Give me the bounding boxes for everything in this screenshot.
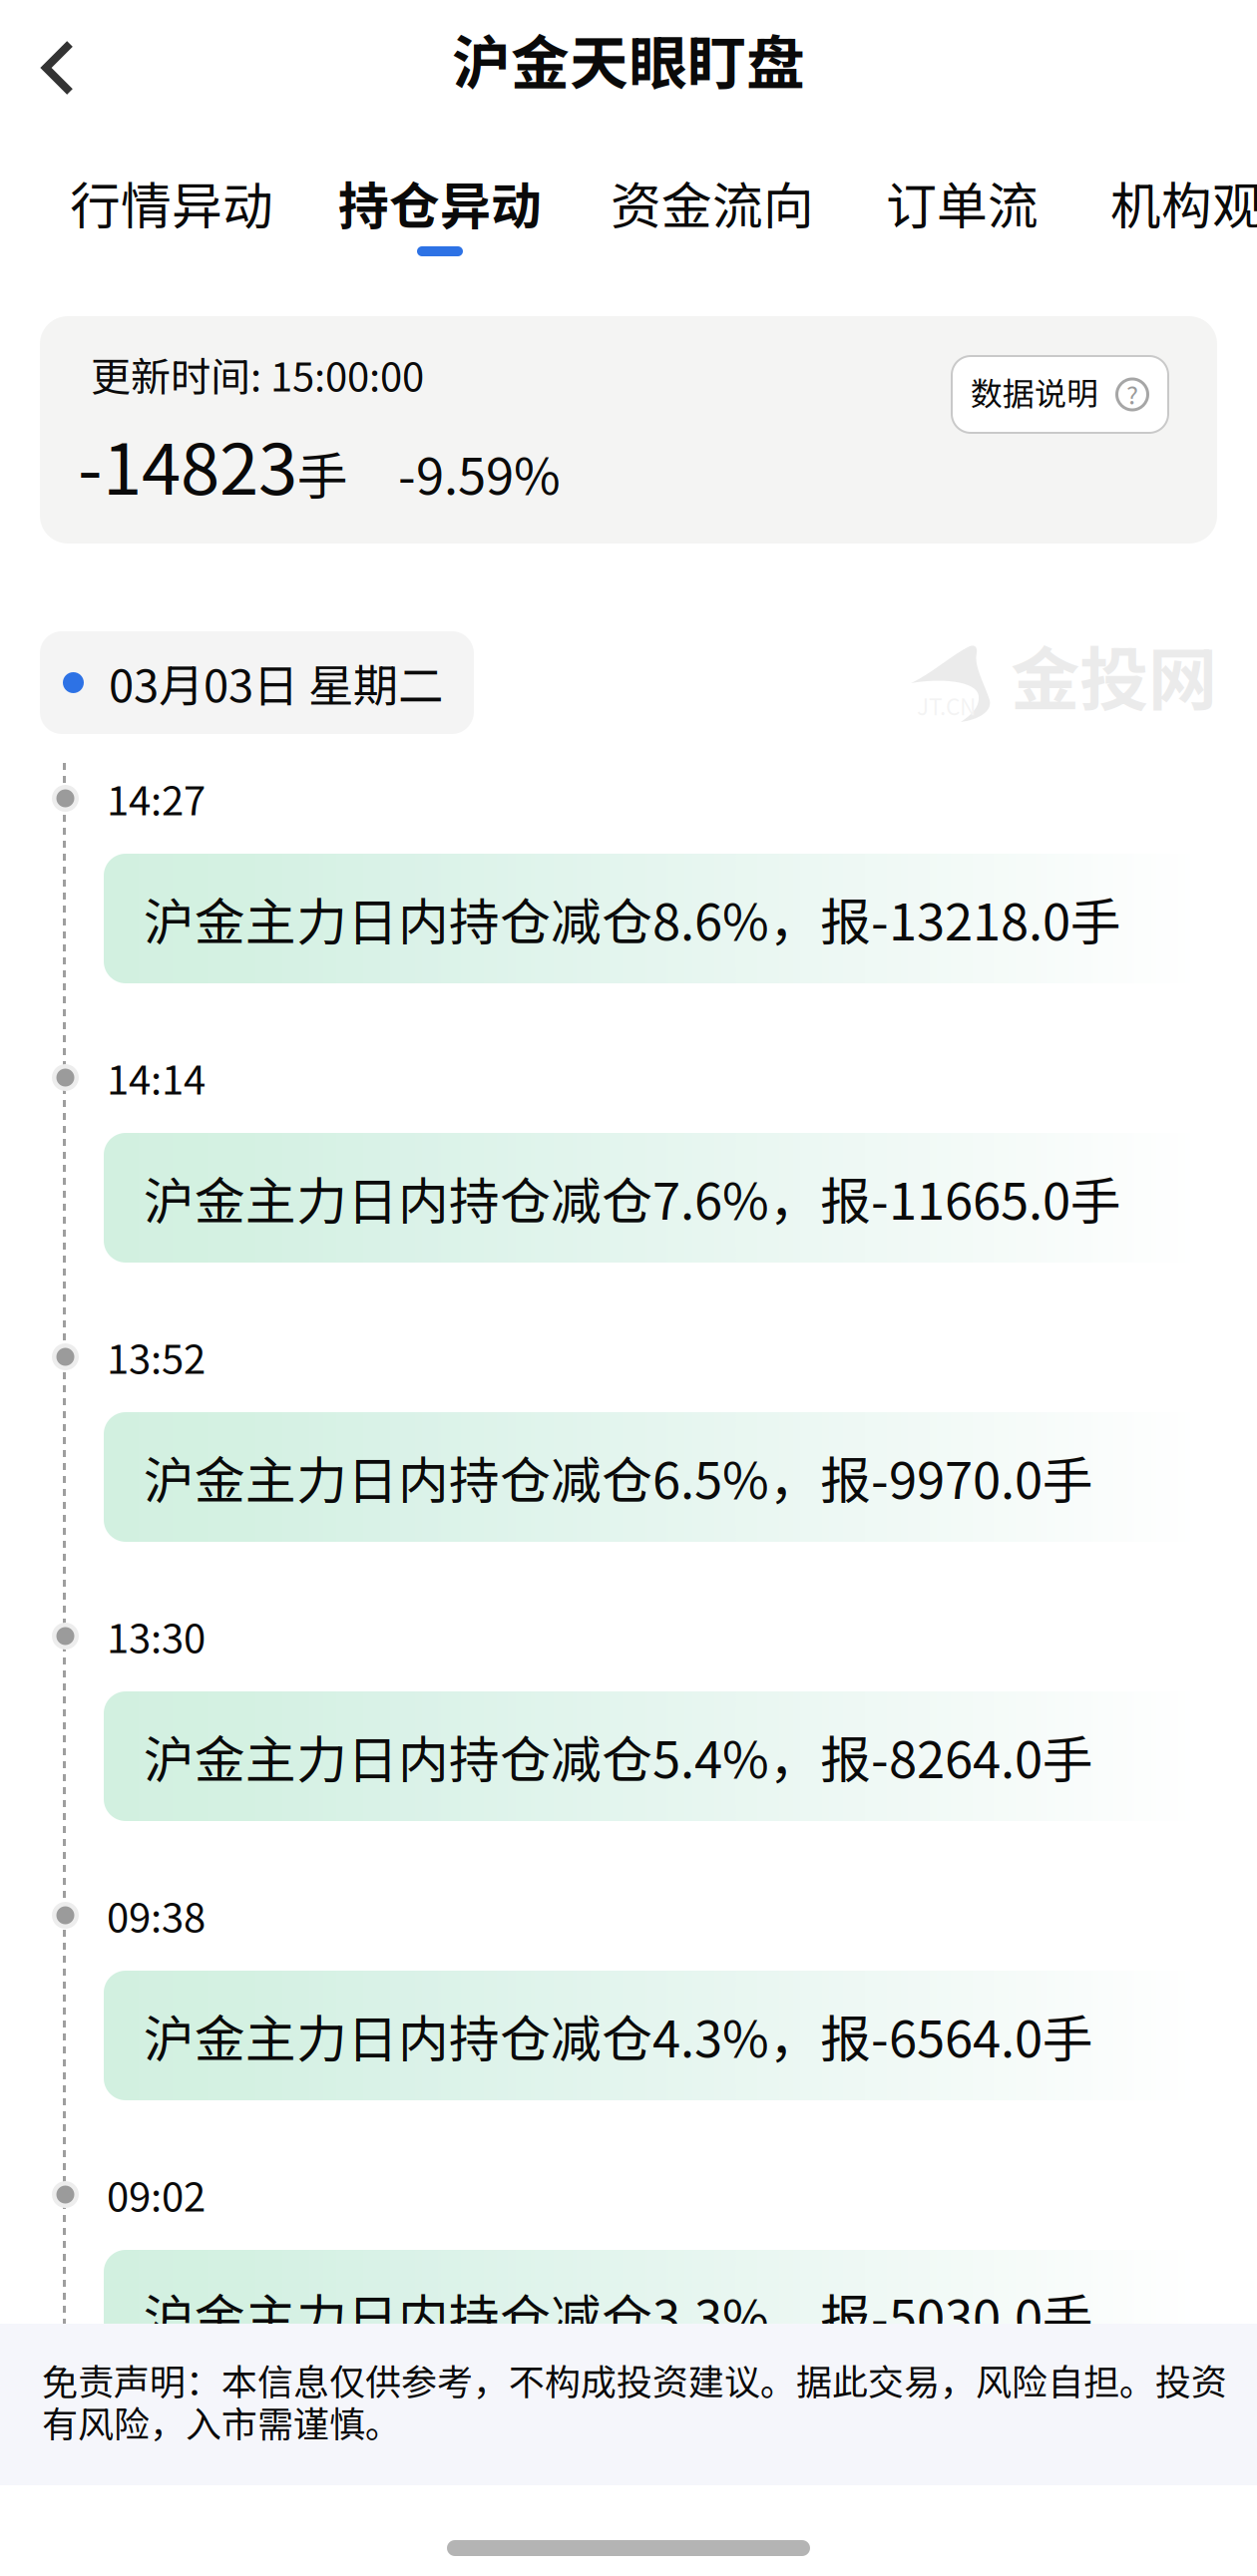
button[interactable]: 沪金主力日内持仓减仓6.5%，报-9970.0手	[104, 1412, 1257, 1542]
staticText: -9.59%	[398, 436, 561, 509]
button[interactable]: Back	[0, 0, 116, 127]
staticText: 14:27	[107, 769, 206, 827]
staticText: 沪金天眼盯盘	[452, 16, 805, 101]
staticText: -14823	[78, 413, 297, 515]
button[interactable]: 沪金主力日内持仓减仓3.3%，报-5030.0手	[104, 2250, 1257, 2380]
button[interactable]: 资金流向	[611, 172, 814, 256]
staticText: 机构观点	[1110, 166, 1257, 239]
staticText: 沪金主力日内持仓减仓3.3%，报-5030.0手	[144, 2278, 1093, 2351]
button[interactable]: 持仓异动	[338, 172, 542, 256]
button[interactable]: 订单流	[886, 172, 1039, 256]
staticText: 金投网	[1011, 624, 1217, 724]
staticText: 03月03日 星期二	[109, 650, 443, 715]
button[interactable]: 行情异动	[70, 172, 273, 256]
staticText: JT.CN	[917, 689, 976, 722]
staticText: 09:38	[107, 1886, 206, 1944]
staticText: 13:52	[107, 1327, 206, 1385]
staticText: 09:02	[107, 2165, 206, 2223]
staticText: 行情异动	[70, 166, 273, 239]
staticText: 沪金主力日内持仓减仓8.6%，报-13218.0手	[144, 882, 1121, 955]
button[interactable]: 机构观点	[1110, 172, 1257, 256]
staticText: 手	[297, 436, 348, 509]
staticText: 有风险，入市需谨慎。	[42, 2396, 401, 2448]
staticText: 沪金主力日内持仓减仓5.4%，报-8264.0手	[144, 1720, 1093, 1793]
staticText: 沪金主力日内持仓减仓6.5%，报-9970.0手	[144, 1440, 1093, 1514]
button[interactable]: 沪金主力日内持仓减仓7.6%，报-11665.0手	[104, 1133, 1257, 1263]
staticText: 沪金主力日内持仓减仓7.6%，报-11665.0手	[144, 1161, 1121, 1234]
staticText: 持仓异动	[338, 166, 542, 239]
staticText: 更新时间: 15:00:00	[91, 345, 424, 403]
staticText: 13:30	[107, 1607, 206, 1664]
staticText: 资金流向	[611, 166, 814, 239]
staticText: 免责声明：本信息仅供参考，不构成投资建议。据此交易，风险自担。投资	[42, 2354, 1227, 2406]
button[interactable]: 沪金主力日内持仓减仓4.3%，报-6564.0手	[104, 1971, 1257, 2100]
staticText: 沪金主力日内持仓减仓4.3%，报-6564.0手	[144, 1999, 1093, 2072]
button[interactable]: 沪金主力日内持仓减仓8.6%，报-13218.0手	[104, 854, 1257, 983]
staticText: 数据说明	[971, 368, 1098, 414]
staticText: 订单流	[886, 166, 1039, 239]
button[interactable]: 数据说明	[952, 356, 1168, 433]
staticText: 14:14	[107, 1048, 206, 1106]
button[interactable]: 沪金主力日内持仓减仓5.4%，报-8264.0手	[104, 1691, 1257, 1821]
staticText: ?	[1126, 375, 1138, 412]
